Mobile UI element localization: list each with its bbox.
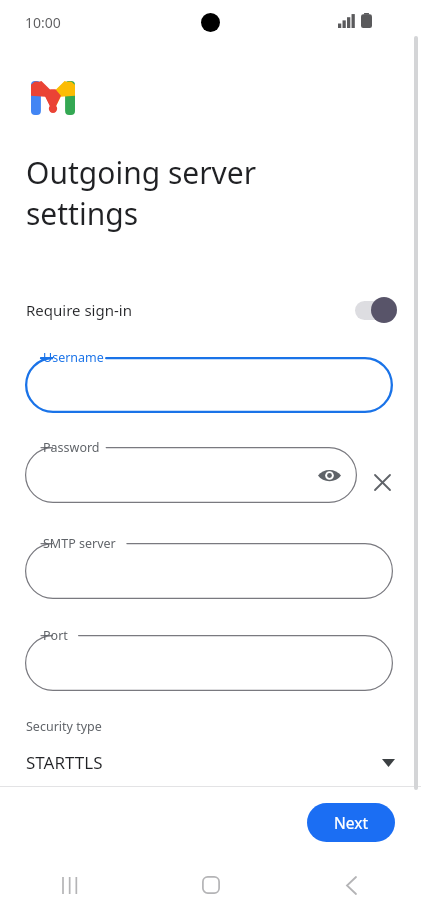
- button[interactable]: Require sign-in toggle: [353, 297, 397, 323]
- button[interactable]: Recent apps: [0, 856, 140, 914]
- button[interactable]: Require sign-in: [0, 288, 421, 332]
- button[interactable]: Back: [281, 856, 421, 914]
- staticText: Next: [334, 812, 369, 833]
- button[interactable]: Username: [25, 357, 393, 413]
- button[interactable]: Password: [25, 447, 357, 503]
- staticText: Port: [43, 627, 68, 644]
- staticText: Security type: [26, 718, 102, 735]
- staticText: Password: [43, 439, 100, 456]
- staticText: 10:00: [25, 13, 61, 32]
- button[interactable]: Next: [307, 803, 395, 842]
- staticText: SMTP server: [43, 535, 116, 552]
- button[interactable]: Show password: [314, 460, 344, 490]
- staticText: STARTTLS: [26, 751, 103, 774]
- button[interactable]: Security type: [0, 718, 421, 787]
- staticText: Username: [43, 349, 104, 366]
- staticText: Require sign-in: [26, 300, 132, 320]
- button[interactable]: Clear password: [367, 467, 397, 497]
- staticText: Outgoing server: [26, 152, 257, 193]
- button[interactable]: Port: [25, 635, 393, 691]
- staticText: settings: [26, 193, 139, 234]
- button[interactable]: SMTP server: [25, 543, 393, 599]
- button[interactable]: Home: [140, 856, 281, 914]
